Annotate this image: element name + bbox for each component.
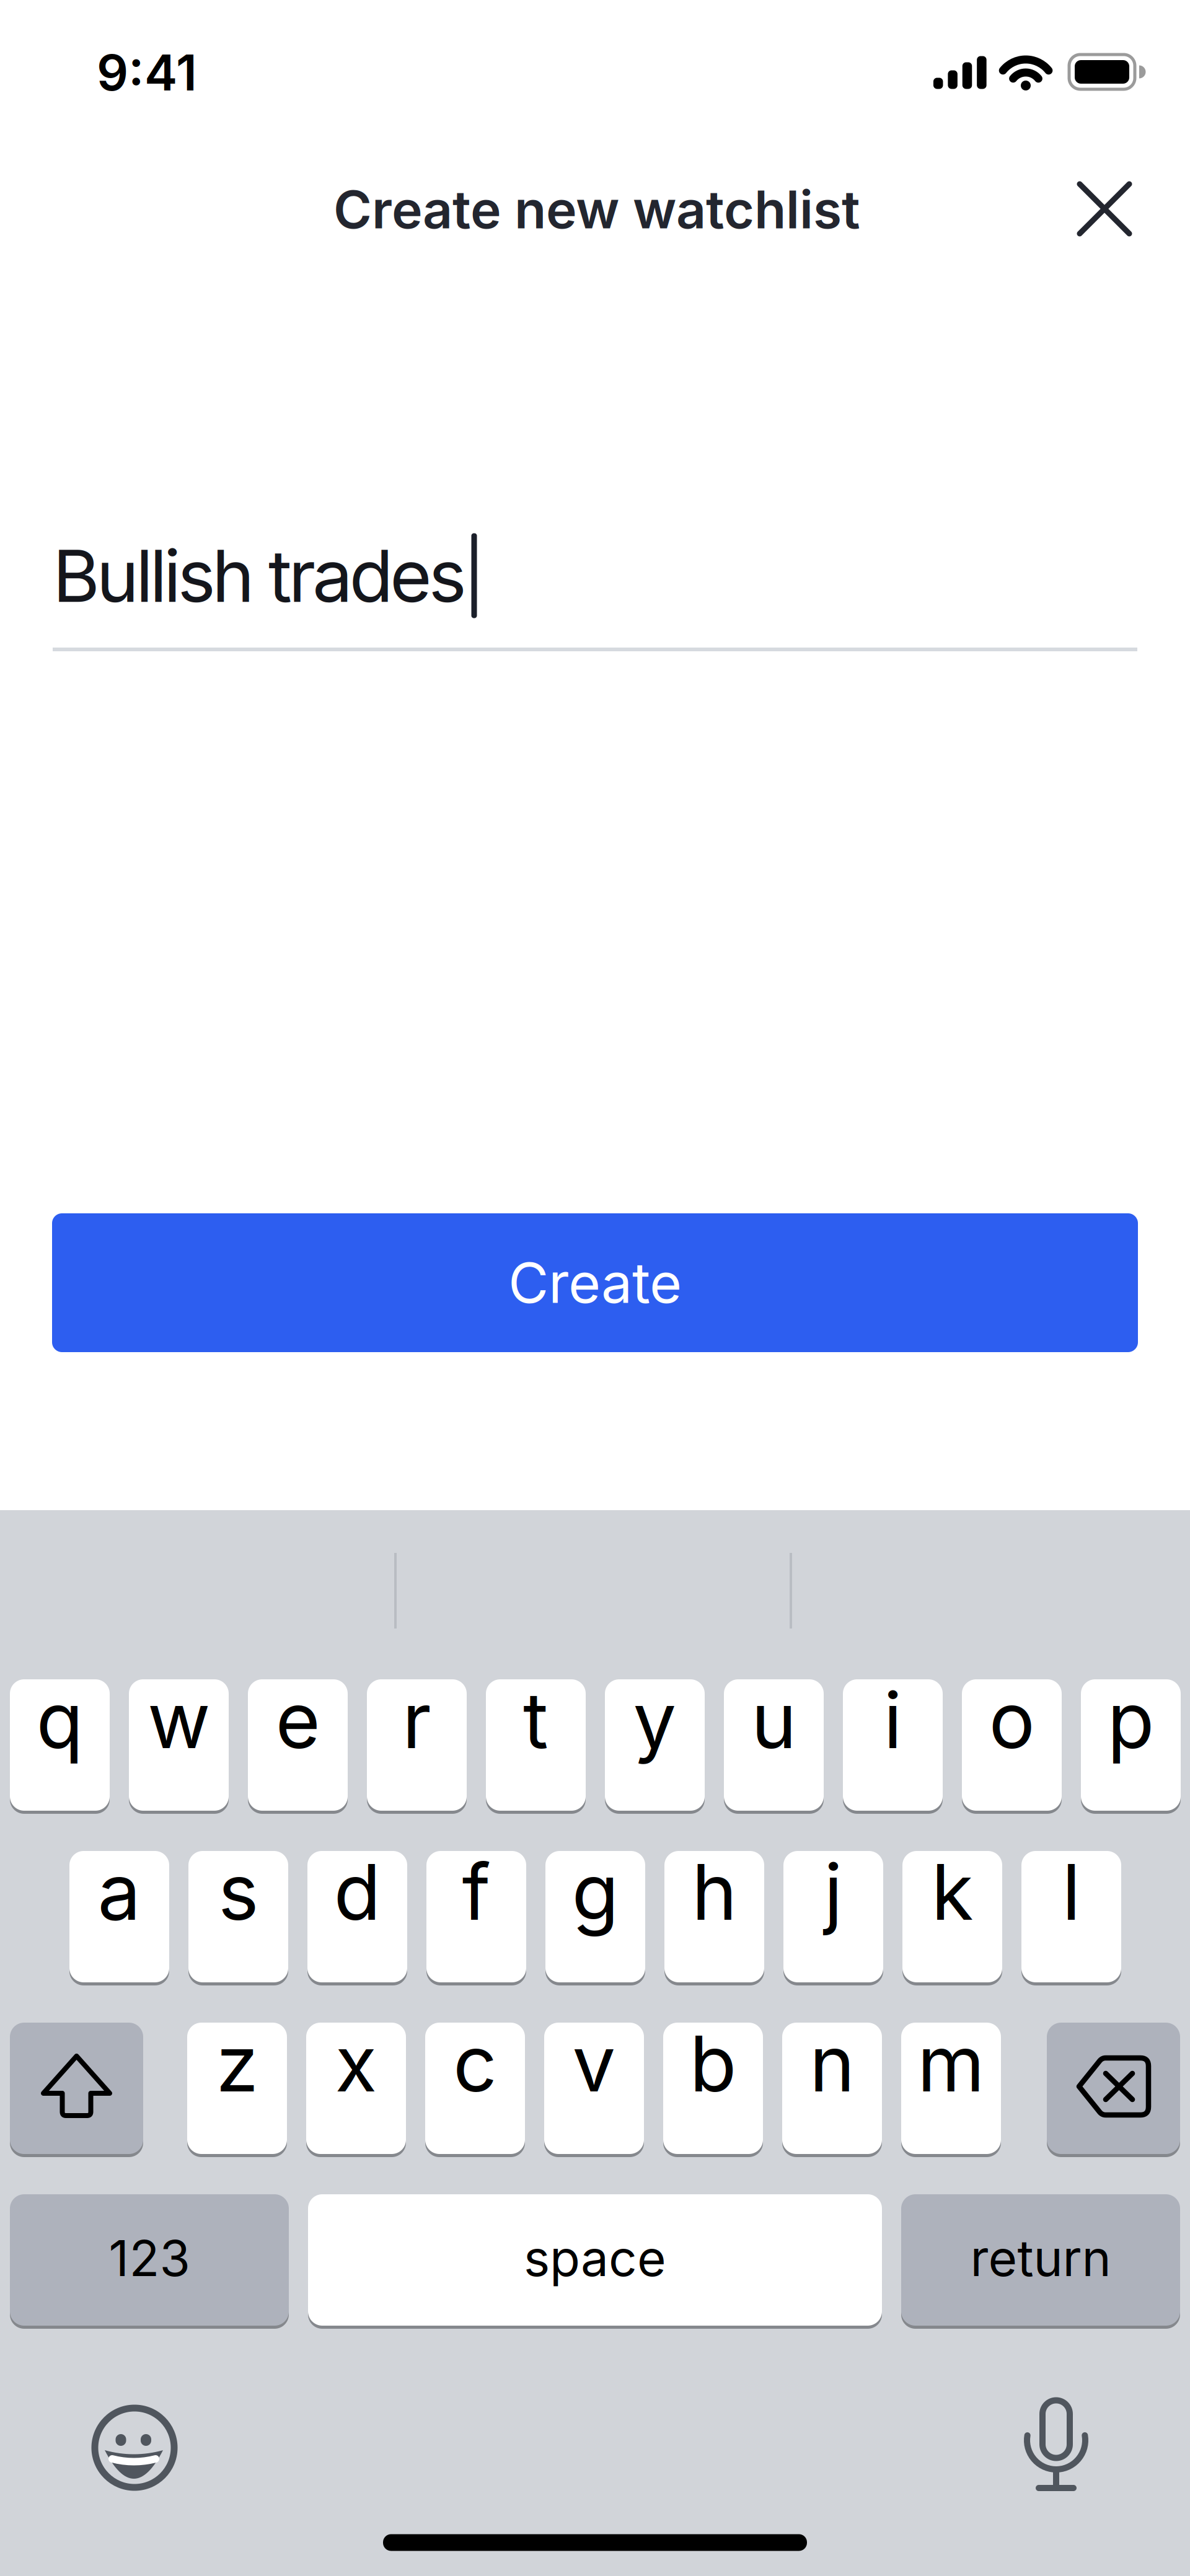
staticText: j	[824, 1847, 843, 1937]
button[interactable]: y	[605, 1677, 705, 1813]
button[interactable]: t	[486, 1677, 586, 1813]
button[interactable]: g	[545, 1848, 645, 1985]
staticText: z	[216, 2018, 258, 2109]
staticText: a	[98, 1847, 141, 1937]
staticText: y	[633, 1675, 677, 1766]
staticText: o	[989, 1675, 1035, 1766]
staticText: f	[462, 1847, 491, 1937]
staticText: l	[1062, 1847, 1081, 1937]
staticText: p	[1107, 1675, 1154, 1766]
staticText: c	[453, 2018, 497, 2109]
staticText: u	[751, 1675, 796, 1766]
staticText: i	[884, 1675, 902, 1766]
staticText: r	[402, 1675, 431, 1766]
button[interactable]: l	[1021, 1848, 1121, 1985]
button[interactable]: h	[664, 1848, 764, 1985]
staticText: Bullish trades	[53, 533, 466, 618]
button[interactable]: Close	[1061, 165, 1148, 252]
staticText: q	[36, 1675, 83, 1766]
button[interactable]: d	[307, 1848, 407, 1985]
button[interactable]: i	[843, 1677, 943, 1813]
staticText: Create new watchlist	[333, 179, 860, 240]
staticText: space	[524, 2229, 666, 2287]
staticText: 9:41	[97, 43, 197, 102]
button[interactable]: p	[1081, 1677, 1181, 1813]
button[interactable]: Dictation	[1006, 2395, 1105, 2494]
staticText: return	[970, 2229, 1111, 2287]
button[interactable]: Delete	[1047, 2020, 1180, 2156]
button[interactable]: a	[69, 1848, 169, 1985]
staticText: w	[148, 1675, 210, 1766]
button[interactable]: 123	[10, 2192, 289, 2328]
staticText: k	[931, 1847, 973, 1937]
staticText: Create	[508, 1250, 682, 1315]
button[interactable]: b	[663, 2020, 763, 2156]
button[interactable]: m	[901, 2020, 1001, 2156]
staticText: s	[218, 1847, 258, 1937]
staticText: x	[335, 2018, 377, 2109]
button[interactable]: s	[188, 1848, 288, 1985]
staticText: t	[523, 1675, 549, 1766]
button[interactable]: q	[10, 1677, 110, 1813]
button[interactable]: f	[426, 1848, 526, 1985]
staticText: b	[690, 2018, 737, 2109]
button[interactable]: Emoji	[85, 2398, 184, 2497]
staticText: d	[334, 1847, 381, 1937]
button[interactable]: Create	[52, 1213, 1138, 1352]
staticText: e	[275, 1675, 320, 1766]
button[interactable]: e	[248, 1677, 348, 1813]
button[interactable]: space	[308, 2192, 882, 2328]
staticText: m	[917, 2018, 985, 2109]
button[interactable]: o	[962, 1677, 1062, 1813]
staticText: g	[572, 1847, 619, 1937]
staticText: 123	[109, 2229, 190, 2287]
staticText: n	[809, 2018, 855, 2109]
button[interactable]: v	[544, 2020, 644, 2156]
button[interactable]: w	[129, 1677, 229, 1813]
button[interactable]: Shift	[10, 2020, 143, 2156]
button[interactable]: u	[724, 1677, 824, 1813]
button[interactable]: c	[425, 2020, 525, 2156]
staticText: h	[692, 1847, 737, 1937]
button[interactable]: k	[902, 1848, 1002, 1985]
button[interactable]: r	[367, 1677, 467, 1813]
button[interactable]: j	[783, 1848, 883, 1985]
button[interactable]: z	[187, 2020, 287, 2156]
button[interactable]: x	[306, 2020, 406, 2156]
staticText: v	[572, 2018, 616, 2109]
button[interactable]: return	[901, 2192, 1180, 2328]
button[interactable]: n	[782, 2020, 882, 2156]
